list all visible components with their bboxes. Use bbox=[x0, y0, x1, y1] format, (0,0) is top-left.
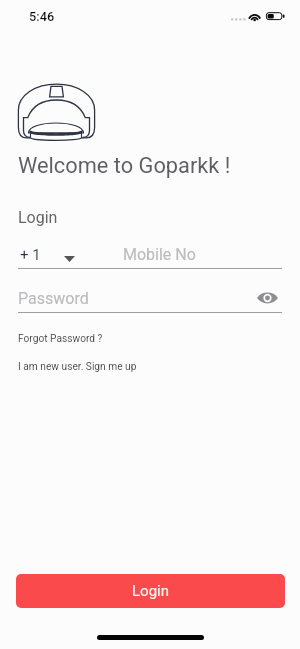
button[interactable]: Login bbox=[16, 574, 285, 608]
staticText: 5:46 bbox=[29, 9, 55, 24]
button[interactable]: Show password bbox=[255, 286, 280, 310]
staticText: Mobile No bbox=[123, 245, 196, 264]
staticText: Password bbox=[18, 289, 89, 308]
button[interactable]: I am new user. Sign me up bbox=[18, 360, 137, 374]
staticText: Login bbox=[132, 582, 169, 600]
button[interactable]: Select country code bbox=[16, 244, 78, 266]
staticText: + 1 bbox=[20, 246, 41, 264]
staticText: Login bbox=[18, 208, 58, 227]
staticText: Welcome to Goparkk ! bbox=[18, 153, 231, 179]
button[interactable]: Forgot Password ? bbox=[18, 332, 103, 346]
